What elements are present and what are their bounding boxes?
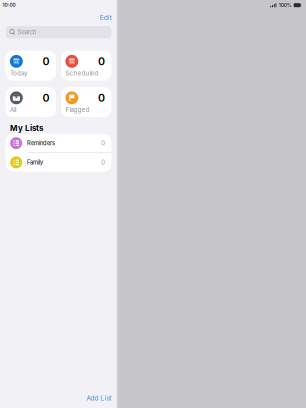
- staticText: 0: [101, 159, 105, 166]
- staticText: 0: [98, 55, 105, 68]
- button[interactable]: 0: [6, 87, 56, 117]
- staticText: My Lists: [10, 123, 43, 133]
- staticText: Flagged: [65, 106, 89, 113]
- staticText: All: [10, 106, 16, 113]
- button[interactable]: Reminders: [6, 134, 111, 152]
- staticText: Edit: [100, 14, 112, 21]
- button[interactable]: 0: [61, 50, 111, 80]
- button[interactable]: Search: [6, 26, 111, 38]
- staticText: 0: [98, 91, 105, 104]
- button[interactable]: Family: [6, 153, 111, 172]
- staticText: Scheduled: [65, 69, 98, 77]
- staticText: Search: [18, 29, 36, 36]
- staticText: 10:00: [2, 2, 15, 8]
- staticText: Today: [10, 69, 27, 77]
- button[interactable]: Edit: [99, 12, 113, 23]
- staticText: Family: [27, 159, 43, 166]
- button[interactable]: Add List: [85, 392, 113, 404]
- staticText: 0: [43, 55, 50, 68]
- staticText: 0: [43, 91, 50, 104]
- staticText: Reminders: [27, 140, 55, 147]
- staticText: Add List: [87, 394, 112, 402]
- staticText: 0: [101, 140, 105, 147]
- staticText: 100%: [279, 2, 292, 8]
- button[interactable]: 0: [61, 87, 111, 117]
- button[interactable]: 0: [6, 50, 56, 80]
